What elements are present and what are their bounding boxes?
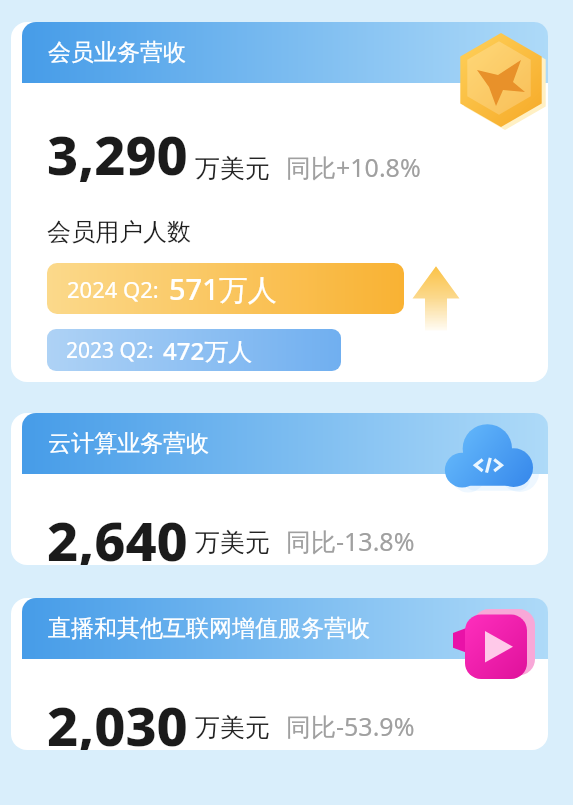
staticText: 万美元	[195, 712, 270, 743]
staticText: 2024 Q2:	[67, 274, 159, 304]
staticText: 同比-53.9%	[286, 709, 415, 743]
button[interactable]: 直播图标	[443, 598, 543, 690]
button[interactable]: 会员业务营收	[11, 22, 548, 382]
button[interactable]: 云计算图标	[438, 416, 543, 498]
staticText: 2,640	[47, 503, 188, 565]
staticText: 2023 Q2:	[66, 336, 154, 365]
button[interactable]: 云计算业务营收	[11, 413, 548, 565]
staticText: 会员业务营收	[48, 38, 186, 67]
staticText: 云计算业务营收	[48, 429, 209, 458]
button[interactable]: 会员业务图标	[451, 30, 551, 130]
staticText: 同比-13.8%	[286, 524, 415, 558]
staticText: 会员用户人数	[47, 217, 191, 247]
staticText: 472万人	[163, 334, 253, 367]
staticText: 万美元	[195, 527, 270, 558]
staticText: 2,030	[47, 688, 188, 750]
button[interactable]: 直播和其他互联网增值服务营收	[11, 598, 548, 750]
staticText: 571万人	[169, 269, 277, 309]
staticText: 3,290	[47, 117, 188, 191]
staticText: 万美元	[195, 153, 270, 184]
staticText: 直播和其他互联网增值服务营收	[48, 614, 370, 643]
button[interactable]: 2024 Q2:	[47, 263, 404, 314]
staticText: 同比+10.8%	[286, 150, 421, 184]
button[interactable]: 2023 Q2:	[47, 329, 341, 371]
